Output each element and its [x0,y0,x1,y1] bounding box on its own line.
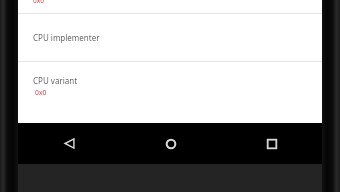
staticText: 0x0 [35,88,47,97]
button[interactable]: 0x0 [18,0,322,13]
staticText: 0x0 [33,0,44,5]
button[interactable]: Back [18,123,120,164]
staticText: CPU implementer [33,32,100,43]
button[interactable]: Home [120,123,221,164]
button[interactable]: Recent apps [221,123,322,164]
button[interactable]: CPU variant [18,62,322,109]
staticText: CPU variant [33,75,78,86]
button[interactable]: CPU implementer [18,14,322,61]
